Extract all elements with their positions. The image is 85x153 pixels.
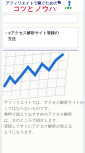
staticText: コツと [13, 5, 34, 13]
staticText: ①アクセス解析サイト登録の [8, 30, 59, 35]
staticText: 方法 [8, 36, 16, 41]
staticText: 登録してすぐにアクセス解析が使える [4, 124, 72, 128]
staticText: アフィリエイトでは、アクセス解析サイトから [4, 100, 85, 105]
staticText: 無料で使えておすすめのアクセス解析 [4, 112, 72, 117]
staticText: ノウハウ [35, 5, 63, 13]
staticText: アフィリエイトで稼ぐための [5, 1, 57, 5]
staticText: ようになります。 [4, 129, 36, 134]
staticText: くてはならないものです。 [4, 106, 52, 111]
staticText: は、②のところで紹介します。 [4, 118, 60, 123]
